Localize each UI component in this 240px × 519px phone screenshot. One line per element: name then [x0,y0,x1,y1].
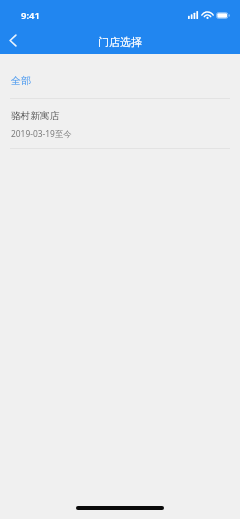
staticText: 门店选择 [98,35,142,49]
staticText: 骆村新寓店 [11,110,59,122]
button[interactable]: Back [0,28,26,53]
staticText: 9:41 [21,9,40,22]
staticText: 全部 [11,74,31,87]
staticText: 2019-03-19至今 [11,128,72,139]
button[interactable]: 骆村新寓店 [0,99,240,148]
button[interactable]: 全部 [0,54,240,98]
